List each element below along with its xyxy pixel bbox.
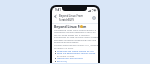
staticText: Beyond Linux From — [54, 24, 87, 29]
staticText: companion volume designed to carry on wh… — [54, 31, 98, 34]
staticText: ScratchBLFS — [59, 18, 74, 22]
staticText: The Beyond Linux From Scratch book is a — [54, 29, 96, 32]
staticText: BLFS FAQ — [57, 60, 67, 63]
staticText: on March 1st 2024. — [54, 47, 74, 50]
button[interactable]: More options — [90, 14, 97, 21]
staticText: Read the development version online — [57, 52, 96, 55]
staticText: in XHTML or PDF — [57, 55, 75, 58]
staticText: Beyond Linux From — [59, 14, 83, 18]
staticText: Download the stable release as XML — [57, 50, 94, 53]
staticText: Mailing lists and archives — [57, 57, 83, 60]
staticText: packages including networking tools and — [54, 39, 97, 42]
staticText: instructions on how to install many soft… — [54, 36, 98, 39]
button[interactable]: Back — [53, 14, 58, 19]
staticText: the LFS book leaves off. It contains — [54, 34, 90, 37]
staticText: 9:41 — [55, 8, 61, 12]
staticText: graphical environments. — [54, 41, 79, 44]
staticText: Current stable version is BLFS 12.1, rel… — [54, 44, 98, 47]
